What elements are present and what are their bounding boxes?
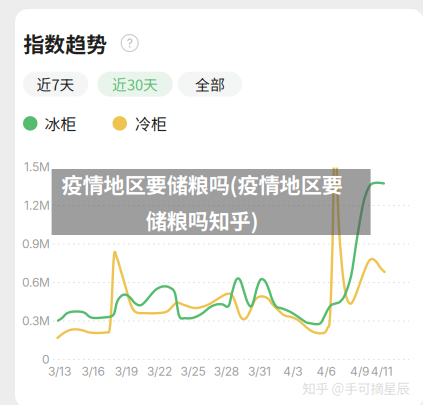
staticText: 3/28: [214, 364, 239, 379]
staticText: 指数趋势: [23, 28, 107, 58]
staticText: 4/11: [371, 364, 393, 379]
staticText: 0.9M: [22, 237, 50, 251]
staticText: 全部: [195, 73, 225, 95]
button[interactable]: 全部: [178, 72, 242, 97]
staticText: 冰柜: [44, 112, 76, 135]
staticText: 3/16: [81, 364, 104, 379]
staticText: 近30天: [112, 73, 158, 95]
button[interactable]: 近30天: [97, 72, 173, 97]
button[interactable]: 近7天: [23, 72, 88, 97]
staticText: 1.2M: [24, 198, 50, 213]
staticText: 1.5M: [24, 160, 50, 174]
staticText: 4/6: [317, 364, 336, 379]
staticText: 0.3M: [22, 314, 50, 328]
staticText: 3/22: [147, 364, 172, 379]
staticText: 3/31: [248, 364, 271, 379]
staticText: 知乎 @手可摘星辰: [302, 378, 409, 398]
staticText: 3/19: [115, 364, 138, 379]
staticText: ?: [127, 36, 133, 50]
staticText: 3/13: [48, 364, 71, 379]
staticText: 近7天: [36, 73, 74, 95]
staticText: 0: [42, 352, 50, 367]
staticText: 疫情地区要储粮吗(疫情地区要: [62, 169, 343, 199]
staticText: 4/9: [350, 364, 369, 379]
staticText: 储粮吗知乎): [146, 204, 259, 235]
staticText: 0.6M: [22, 275, 50, 290]
staticText: 3/25: [180, 364, 205, 379]
staticText: 冷柜: [135, 112, 167, 135]
staticText: 4/3: [283, 364, 302, 379]
